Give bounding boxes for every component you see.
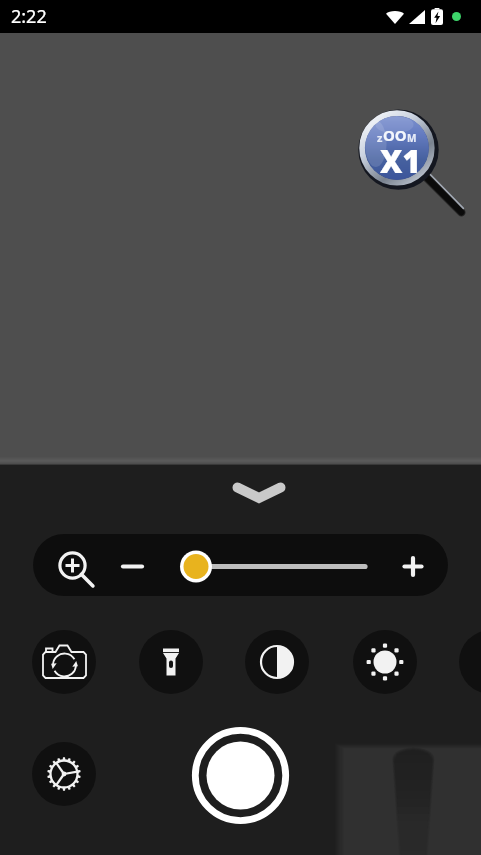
button[interactable]: Switch camera: [32, 630, 96, 694]
staticText: OO: [383, 125, 407, 145]
staticText: 2:22: [11, 4, 47, 29]
button[interactable]: Settings: [32, 742, 96, 806]
button[interactable]: Collapse panel: [223, 473, 295, 513]
button[interactable]: Capture: [191, 726, 290, 825]
staticText: X1: [380, 140, 421, 182]
button[interactable]: Zoom slider: [33, 534, 448, 596]
button[interactable]: Contrast: [245, 630, 309, 694]
staticText: M: [407, 131, 417, 145]
button[interactable]: Brightness: [353, 630, 417, 694]
staticText: z: [377, 130, 383, 145]
button[interactable]: More: [459, 630, 481, 694]
button[interactable]: Flashlight: [139, 630, 203, 694]
button[interactable]: Zoom level X1: [352, 103, 457, 208]
